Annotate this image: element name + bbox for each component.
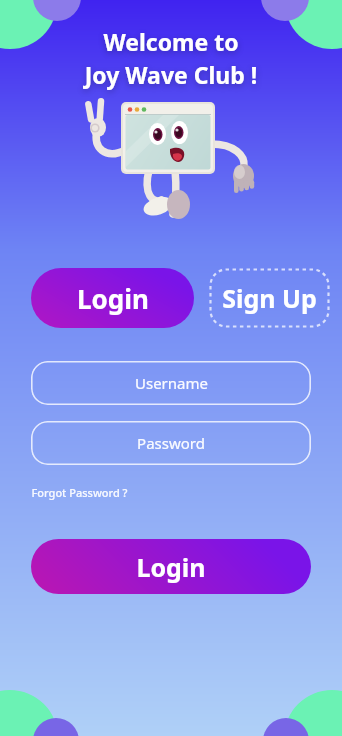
staticText: Login: [136, 550, 206, 584]
staticText: Login: [77, 281, 149, 316]
staticText: Password: [137, 433, 205, 453]
button[interactable]: Forgot Password ?: [31, 483, 128, 502]
staticText: Username: [135, 373, 208, 393]
button[interactable]: Login: [31, 268, 194, 328]
staticText: Forgot Password ?: [31, 485, 128, 500]
staticText: Welcome to: [0, 26, 342, 57]
staticText: Sign Up: [222, 281, 317, 315]
button[interactable]: Password: [31, 421, 311, 465]
button[interactable]: Username: [31, 361, 311, 405]
button[interactable]: Sign Up: [209, 268, 330, 328]
staticText: Joy Wave Club !: [0, 59, 342, 90]
button[interactable]: Login: [31, 539, 311, 594]
